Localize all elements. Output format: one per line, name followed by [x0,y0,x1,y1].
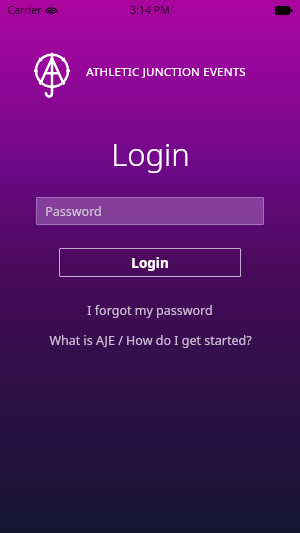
button[interactable]: Login [59,248,241,277]
staticText: Password [45,203,102,220]
staticText: 3:14 PM [130,3,170,17]
button[interactable]: I forgot my password [0,299,300,321]
button[interactable]: Password [36,197,264,225]
staticText: What is AJE / How do I get started? [49,332,252,349]
button[interactable]: What is AJE / How do I get started? [0,329,300,351]
staticText: Login [131,254,169,272]
staticText: Login [111,133,190,175]
staticText: Carrier [7,3,42,17]
staticText: I forgot my password [87,302,213,319]
staticText: ATHLETIC JUNCTION EVENTS [86,64,246,80]
